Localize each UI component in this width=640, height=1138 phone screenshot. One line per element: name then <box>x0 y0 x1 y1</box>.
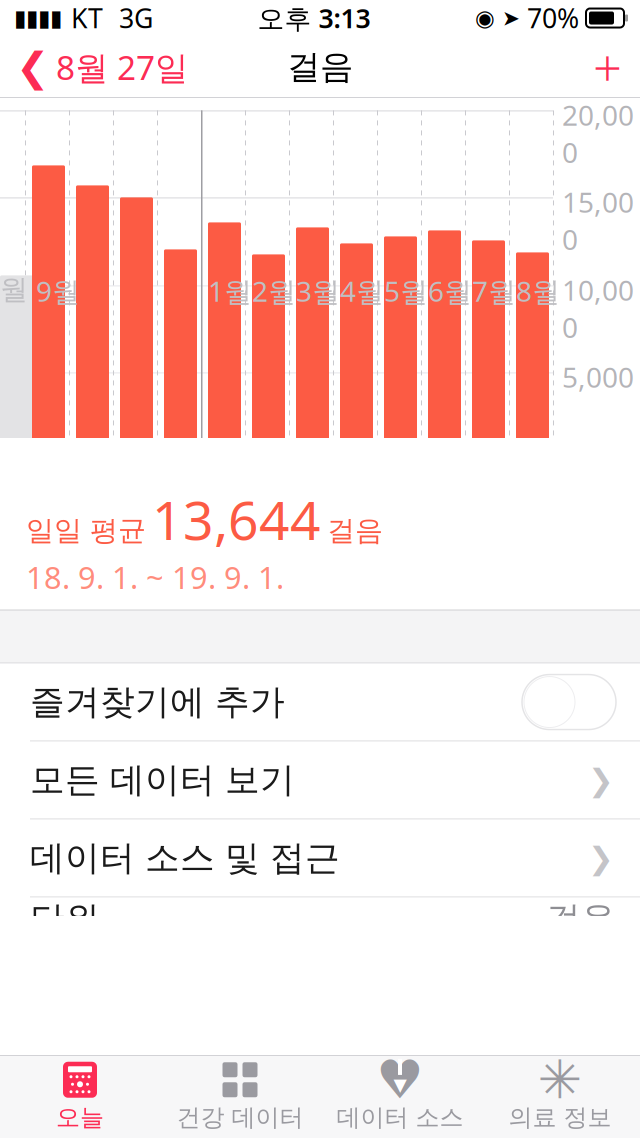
staticText: 2018년 <box>32 521 124 559</box>
staticText: 걸음 <box>327 514 383 548</box>
staticText: + <box>593 33 622 101</box>
staticText: 월 <box>72 504 100 538</box>
button[interactable]: 모든 데이터 보기 <box>0 741 640 818</box>
staticText: 8월 27일 <box>56 45 188 89</box>
staticText: 5월 <box>384 272 428 310</box>
staticText: 즐겨찾기에 추가 <box>30 681 285 723</box>
staticText: ❯ <box>588 763 614 797</box>
staticText: 18. 9. 1. ~ 19. 9. 1. <box>26 557 284 597</box>
staticText: ✳ <box>537 1049 582 1110</box>
staticText: 20,000 <box>562 96 634 171</box>
staticText: 3G <box>105 0 153 36</box>
staticText: ▮▮▮▮ <box>14 5 62 31</box>
staticText: 8월 <box>516 272 560 310</box>
button[interactable]: 년 <box>469 112 616 159</box>
staticText: 5,000 <box>562 358 634 396</box>
button[interactable]: 건강 데이터 <box>160 1055 320 1138</box>
staticText: 일일 평균 <box>26 514 146 548</box>
button[interactable]: 일 <box>24 112 171 159</box>
staticText: 월 <box>116 504 144 538</box>
staticText: 12 <box>160 468 192 506</box>
button[interactable]: ❮ <box>0 36 188 98</box>
staticText: 오늘 <box>56 1103 104 1132</box>
staticText: 단위 <box>30 897 100 940</box>
staticText: 년 <box>529 118 557 153</box>
staticText: 9월 <box>36 272 80 310</box>
staticText: 4월 <box>340 272 384 310</box>
button[interactable]: 데이터 추가 <box>575 29 640 105</box>
staticText: ♥ <box>376 1049 424 1110</box>
button[interactable]: 주 <box>172 112 319 159</box>
staticText: 의료 정보 <box>508 1103 611 1132</box>
button[interactable]: ✳ <box>480 1055 640 1138</box>
button[interactable]: ♥ <box>320 1055 480 1138</box>
button[interactable]: 즐겨찾기에 추가 <box>0 663 640 740</box>
button[interactable]: 단위 <box>0 897 640 974</box>
staticText: 6월 <box>428 272 472 310</box>
staticText: 13,644 <box>152 484 321 555</box>
staticText: 건강 데이터 <box>176 1103 303 1132</box>
staticText: 데이터 소스 및 접근 <box>30 837 340 879</box>
staticText: 월 <box>0 272 28 307</box>
staticText: KT <box>64 0 103 36</box>
staticText: 15,000 <box>562 183 634 258</box>
button[interactable]: 오늘 <box>0 1055 160 1138</box>
staticText: ▼ <box>393 1075 406 1095</box>
staticText: ❯ <box>588 841 614 875</box>
staticText: 18. 9. 1. ~ 19. 9. 1. <box>188 173 452 215</box>
staticText: 걸음 <box>546 897 616 940</box>
staticText: 오후 3:13 <box>257 0 370 36</box>
staticText: 3월 <box>296 272 340 310</box>
staticText: 70% <box>527 0 579 36</box>
staticText: ❮ <box>16 44 50 90</box>
staticText: 데이터 소스 <box>336 1103 463 1132</box>
staticText: 모든 데이터 보기 <box>30 759 295 801</box>
staticText: 월 <box>160 504 188 538</box>
staticText: 1월 <box>208 272 252 310</box>
staticText: ❯ <box>582 175 610 213</box>
staticText: ➤ <box>502 6 520 30</box>
staticText: 주 <box>232 118 260 153</box>
staticText: ◉ <box>475 5 495 31</box>
staticText: 2019년 <box>206 521 298 559</box>
staticText: 7월 <box>472 272 516 310</box>
staticText: 2월 <box>252 272 296 310</box>
button[interactable]: 월 <box>321 112 468 159</box>
button[interactable]: 데이터 소스 및 접근 <box>0 819 640 896</box>
staticText: 10,000 <box>562 271 634 346</box>
staticText: 걸음 <box>287 46 353 87</box>
staticText: ❮ <box>30 175 58 213</box>
button[interactable]: 다음 기간 <box>572 170 620 218</box>
button[interactable]: 이전 기간 <box>20 170 68 218</box>
